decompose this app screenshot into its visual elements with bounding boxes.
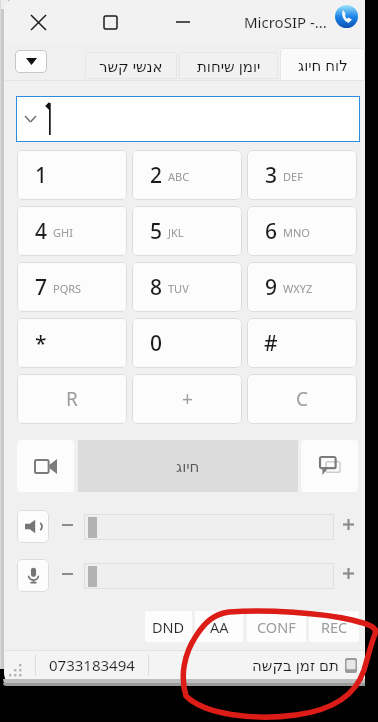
- staticText: 5: [150, 217, 163, 246]
- staticText: JKL: [168, 225, 184, 240]
- button[interactable]: *: [17, 318, 127, 368]
- button[interactable]: Speaker volume: [17, 510, 49, 543]
- staticText: PQRS: [53, 281, 82, 296]
- button[interactable]: 5: [132, 206, 242, 256]
- staticText: R: [66, 386, 78, 412]
- button[interactable]: C: [247, 374, 357, 424]
- staticText: CONF: [257, 617, 296, 637]
- staticText: 9: [265, 273, 278, 302]
- button[interactable]: 2: [132, 150, 242, 200]
- staticText: GHI: [53, 225, 73, 240]
- button[interactable]: REC: [309, 611, 359, 642]
- button[interactable]: Video call: [17, 440, 74, 492]
- button[interactable]: Minimize: [160, 2, 205, 42]
- button[interactable]: Close: [16, 2, 61, 42]
- button[interactable]: 3: [247, 150, 357, 200]
- staticText: DND: [152, 617, 185, 637]
- button[interactable]: 1: [17, 150, 127, 200]
- staticText: TUV: [168, 281, 189, 296]
- staticText: DEF: [283, 169, 303, 184]
- staticText: יומן שיחות: [197, 56, 261, 76]
- staticText: אנשי קשר: [99, 56, 163, 76]
- button[interactable]: Maximize: [88, 2, 133, 42]
- button[interactable]: 0: [132, 318, 242, 368]
- button[interactable]: AA: [195, 611, 243, 642]
- staticText: 2: [150, 161, 163, 190]
- button[interactable]: 6: [247, 206, 357, 256]
- staticText: #: [264, 329, 278, 358]
- staticText: לוח חיוג: [298, 55, 348, 75]
- staticText: +: [182, 386, 193, 412]
- staticText: 7: [35, 273, 48, 302]
- button[interactable]: Send message: [301, 440, 358, 492]
- staticText: 6: [265, 217, 278, 246]
- staticText: תם זמן בקשה: [252, 655, 339, 675]
- staticText: ABC: [168, 169, 190, 184]
- button[interactable]: +: [132, 374, 242, 424]
- button[interactable]: R: [17, 374, 127, 424]
- staticText: MicroSIP -...: [244, 12, 327, 32]
- button[interactable]: #: [247, 318, 357, 368]
- staticText: 0733183494: [49, 655, 135, 675]
- button[interactable]: אנשי קשר: [85, 52, 177, 79]
- staticText: *: [35, 329, 47, 358]
- button[interactable]: Microphone volume: [17, 559, 49, 592]
- button[interactable]: 4: [17, 206, 127, 256]
- staticText: 8: [150, 273, 163, 302]
- button[interactable]: 7: [17, 262, 127, 312]
- button[interactable]: [16, 96, 360, 142]
- button[interactable]: 9: [247, 262, 357, 312]
- staticText: 0: [150, 329, 163, 358]
- button[interactable]: [84, 563, 334, 589]
- staticText: 4: [35, 217, 48, 246]
- staticText: C: [296, 386, 309, 412]
- button[interactable]: לוח חיוג: [280, 48, 365, 81]
- button[interactable]: חיוג: [78, 440, 298, 492]
- button[interactable]: CONF: [247, 611, 306, 642]
- staticText: REC: [321, 617, 348, 637]
- button[interactable]: [84, 514, 334, 540]
- staticText: MNO: [283, 225, 310, 240]
- staticText: חיוג: [176, 458, 200, 475]
- staticText: WXYZ: [283, 281, 313, 296]
- staticText: 1: [35, 161, 48, 190]
- button[interactable]: 8: [132, 262, 242, 312]
- staticText: AA: [210, 617, 229, 637]
- staticText: 3: [265, 161, 278, 190]
- button[interactable]: DND: [145, 611, 192, 642]
- button[interactable]: יומן שיחות: [179, 52, 278, 79]
- button[interactable]: More tabs: [15, 50, 47, 73]
